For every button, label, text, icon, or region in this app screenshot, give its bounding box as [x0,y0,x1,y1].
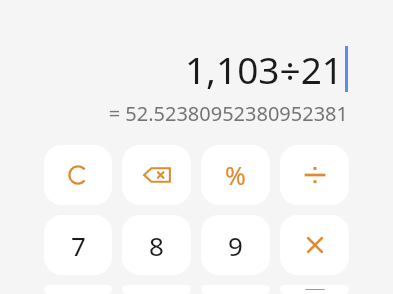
button[interactable]: 9 [201,215,270,275]
staticText: 7 [71,228,86,263]
button[interactable]: Multiply [280,215,349,275]
staticText: 1,103÷21 [184,44,343,94]
staticText: 8 [149,228,164,263]
staticText: % [225,158,246,192]
button[interactable]: 8 [122,215,191,275]
button[interactable]: Divide [280,145,349,205]
button[interactable]: Percent [201,145,270,205]
button[interactable]: Clear [44,145,112,205]
button[interactable]: Backspace [122,145,191,205]
staticText: = 52.52380952380952381 [108,100,348,127]
button[interactable]: Minus [280,285,349,294]
button[interactable]: 7 [44,215,112,275]
staticText: 9 [228,228,243,263]
